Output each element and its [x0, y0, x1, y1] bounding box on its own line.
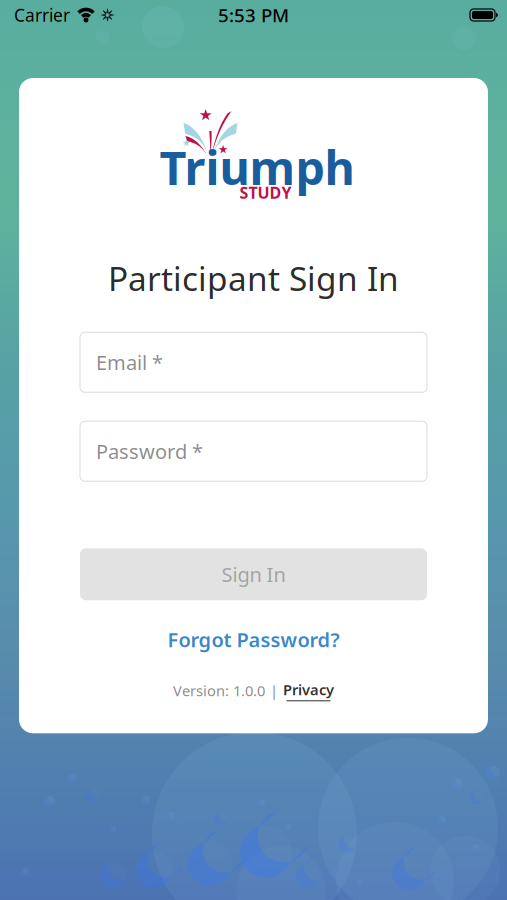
staticText: Sign In [221, 561, 285, 588]
staticText: Email * [96, 349, 163, 376]
staticText: Triumph [159, 136, 354, 198]
staticText: | [270, 681, 278, 700]
button[interactable]: Privacy [283, 680, 334, 701]
staticText: Participant Sign In [108, 256, 399, 300]
staticText: 5:53 PM [218, 3, 289, 27]
staticText: Privacy [283, 680, 334, 699]
staticText: Password * [96, 438, 203, 465]
staticText: Forgot Password? [167, 626, 339, 653]
button[interactable]: Forgot Password? [167, 626, 339, 653]
button[interactable]: Sign In [80, 548, 427, 600]
staticText: STUDY [239, 182, 291, 203]
staticText: Carrier [14, 3, 70, 26]
staticText: Version: 1.0.0 [173, 681, 265, 700]
